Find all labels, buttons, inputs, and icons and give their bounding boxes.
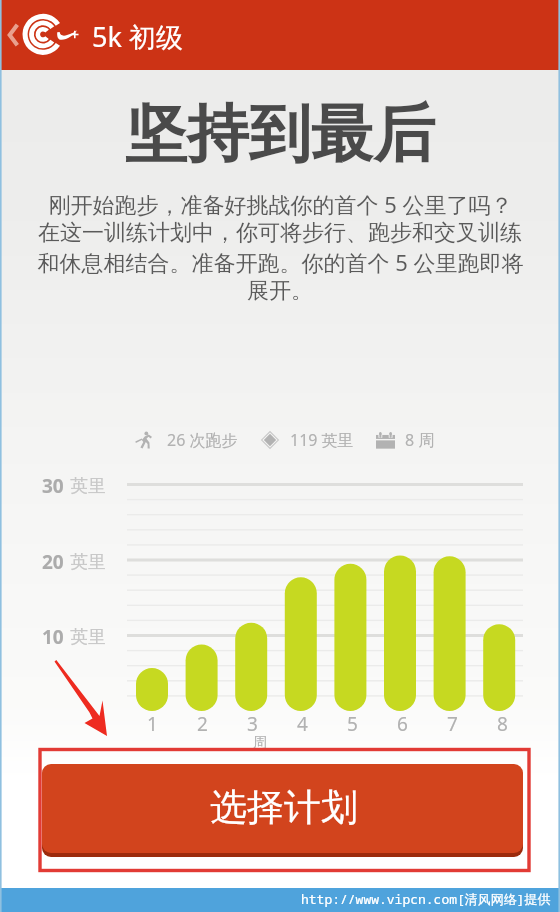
staticText: 展开。: [247, 277, 313, 305]
staticText: 2: [197, 711, 208, 737]
staticText: 刚开始跑步，准备好挑战你的首个 5 公里了吗？: [48, 189, 513, 219]
button[interactable]: 选择计划: [42, 762, 523, 855]
staticText: 1: [147, 711, 158, 737]
staticText: 6: [397, 711, 408, 737]
staticText: 英里: [70, 551, 106, 574]
staticText: 26 次跑步: [167, 429, 238, 451]
staticText: 119 英里: [290, 429, 354, 451]
staticText: 坚持到最后: [0, 95, 560, 173]
staticText: 7: [447, 711, 458, 737]
staticText: 20: [42, 549, 64, 575]
staticText: 周: [253, 734, 267, 752]
staticText: 英里: [70, 475, 106, 498]
staticText: 英里: [70, 626, 106, 649]
staticText: 和休息相结合。准备开跑。你的首个 5 公里跑即将: [37, 247, 524, 277]
staticText: 4: [297, 711, 308, 737]
button[interactable]: Back: [0, 0, 26, 70]
staticText: 30: [42, 473, 64, 499]
staticText: 选择计划: [210, 784, 358, 831]
staticText: 在这一训练计划中，你可将步行、跑步和交叉训练: [38, 219, 522, 247]
staticText: 8 周: [405, 429, 435, 451]
staticText: 8: [497, 711, 508, 737]
staticText: 5k 初级: [92, 18, 183, 55]
staticText: http://www.vipcn.com[清风网络]提供: [301, 890, 551, 908]
staticText: 5: [347, 711, 358, 737]
staticText: 10: [42, 624, 64, 650]
staticText: 3: [247, 711, 258, 737]
